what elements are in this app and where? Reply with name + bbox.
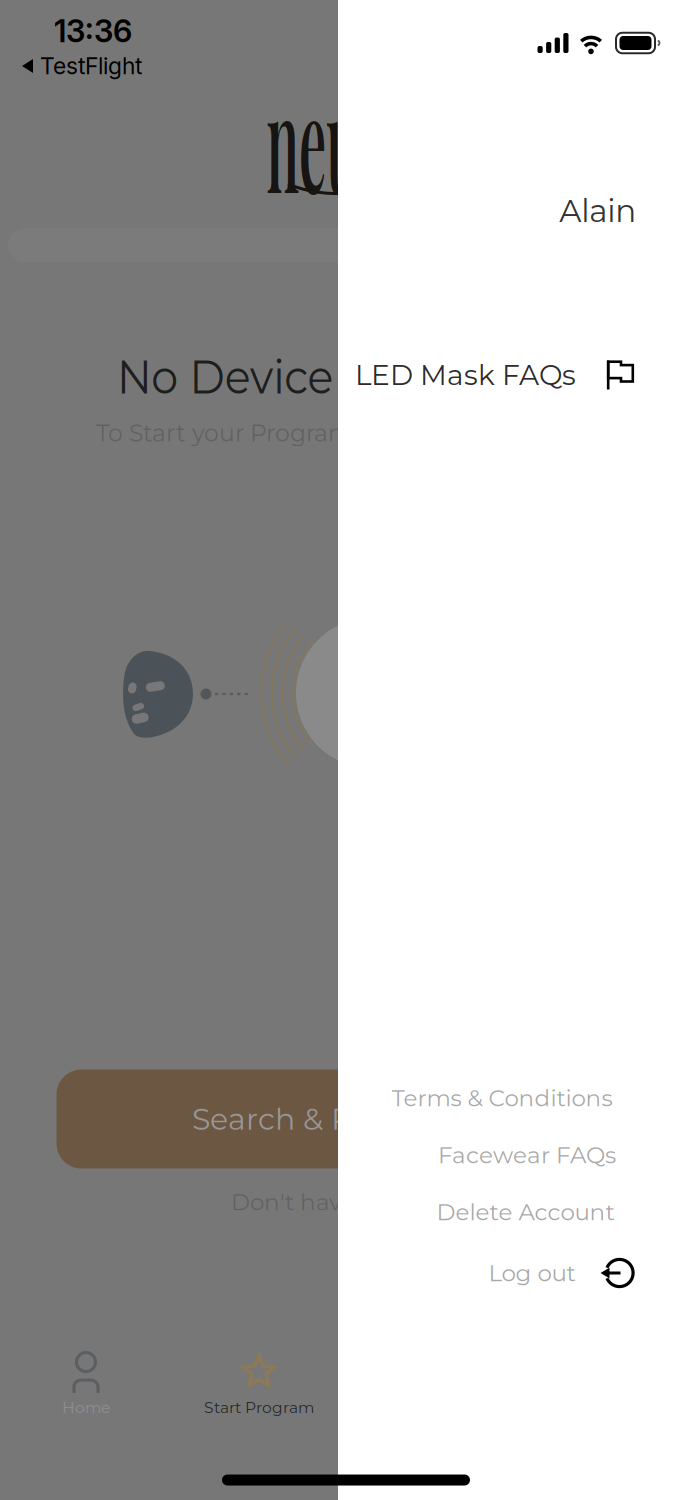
staticText: neue: [176, 47, 475, 227]
button[interactable]: Don't have a Device?: [231, 1188, 471, 1216]
staticText: Start Program: [204, 1398, 314, 1417]
button[interactable]: Log out: [488, 1256, 635, 1290]
staticText: 13:36: [54, 12, 132, 50]
staticText: LED Mask FAQs: [355, 358, 576, 392]
staticText: To Start your Program connect your devic…: [96, 419, 596, 447]
staticText: Alain: [559, 192, 636, 230]
staticText: Home: [62, 1398, 110, 1417]
button[interactable]: LED Mask FAQs: [355, 358, 634, 392]
button[interactable]: Delete Account: [436, 1198, 614, 1226]
staticText: TestFlight: [40, 52, 142, 80]
staticText: Delete Account: [436, 1198, 614, 1226]
staticText: Log out: [488, 1259, 575, 1287]
staticText: Facewear FAQs: [438, 1141, 616, 1169]
button[interactable]: Start Program: [169, 1343, 349, 1423]
button[interactable]: Home: [1, 1343, 171, 1423]
button[interactable]: Alain: [559, 192, 636, 230]
staticText: Don't have a Device?: [231, 1188, 471, 1216]
staticText: Search & Pair Device: [192, 1101, 500, 1137]
staticText: No Device Connected: [99, 349, 598, 405]
button[interactable]: Facewear FAQs: [438, 1141, 616, 1169]
button[interactable]: Search & Pair Device: [56, 1069, 635, 1168]
button[interactable]: Terms & Conditions: [391, 1084, 612, 1112]
staticText: Terms & Conditions: [391, 1084, 612, 1112]
